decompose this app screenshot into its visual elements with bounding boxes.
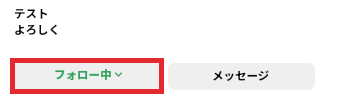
staticText: フォロー中 xyxy=(54,66,112,83)
staticText: テスト xyxy=(14,5,49,22)
button[interactable]: フォロー中 xyxy=(12,63,163,90)
other: Highlighted follow button xyxy=(10,58,164,94)
staticText: よろしく xyxy=(14,21,60,38)
button[interactable]: メッセージ xyxy=(168,63,315,90)
staticText: メッセージ xyxy=(212,67,270,84)
